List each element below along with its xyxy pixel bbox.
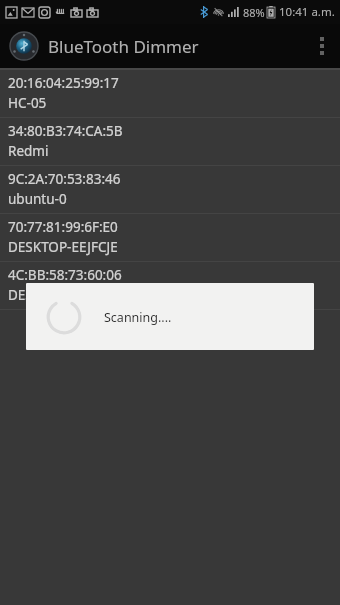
button[interactable]: 20:16:04:25:99:17 — [0, 70, 340, 117]
button[interactable]: 4C:BB:58:73:60:06 — [0, 262, 340, 309]
staticText: HC-05 — [8, 94, 47, 112]
staticText: 9C:2A:70:53:83:46 — [8, 170, 121, 188]
staticText: 20:16:04:25:99:17 — [8, 74, 119, 92]
staticText: DESKTOP-EEJFCJE — [8, 238, 118, 256]
button[interactable]: Scanning.... — [26, 283, 314, 350]
button[interactable]: 70:77:81:99:6F:E0 — [0, 214, 340, 261]
button[interactable]: 9C:2A:70:53:83:46 — [0, 166, 340, 213]
staticText: DESKTOP-XXXXXXX — [8, 286, 127, 304]
staticText: 4C:BB:58:73:60:06 — [8, 266, 122, 284]
staticText: 70:77:81:99:6F:E0 — [8, 218, 118, 236]
staticText: 10:41 a.m. — [279, 4, 335, 20]
staticText: ubuntu-0 — [8, 190, 67, 208]
button[interactable]: More options — [304, 24, 340, 68]
staticText: Scanning.... — [104, 309, 172, 326]
staticText: 88% — [243, 5, 265, 20]
staticText: BlueTooth Dimmer — [48, 35, 199, 58]
staticText: 34:80:B3:74:CA:5B — [8, 122, 123, 140]
staticText: Redmi — [8, 142, 49, 160]
button[interactable]: 34:80:B3:74:CA:5B — [0, 118, 340, 165]
